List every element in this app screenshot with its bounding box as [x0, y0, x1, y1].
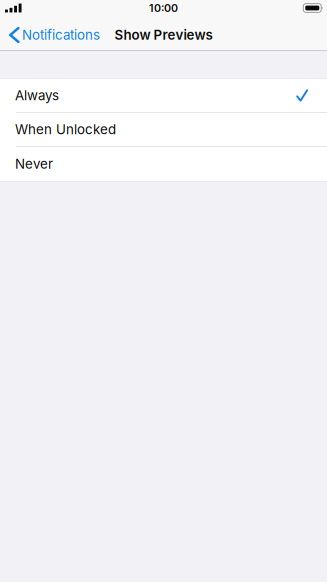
staticText: Never [15, 156, 53, 172]
staticText: 10:00 [149, 2, 178, 14]
staticText: Notifications [22, 27, 100, 43]
staticText: Always [15, 88, 59, 103]
button[interactable]: Never [0, 147, 327, 181]
button[interactable]: Back to Notifications [0, 27, 100, 43]
button[interactable]: When Unlocked [0, 113, 327, 147]
button[interactable]: Always [0, 79, 327, 113]
staticText: Show Previews [114, 27, 212, 43]
staticText: When Unlocked [15, 122, 116, 137]
